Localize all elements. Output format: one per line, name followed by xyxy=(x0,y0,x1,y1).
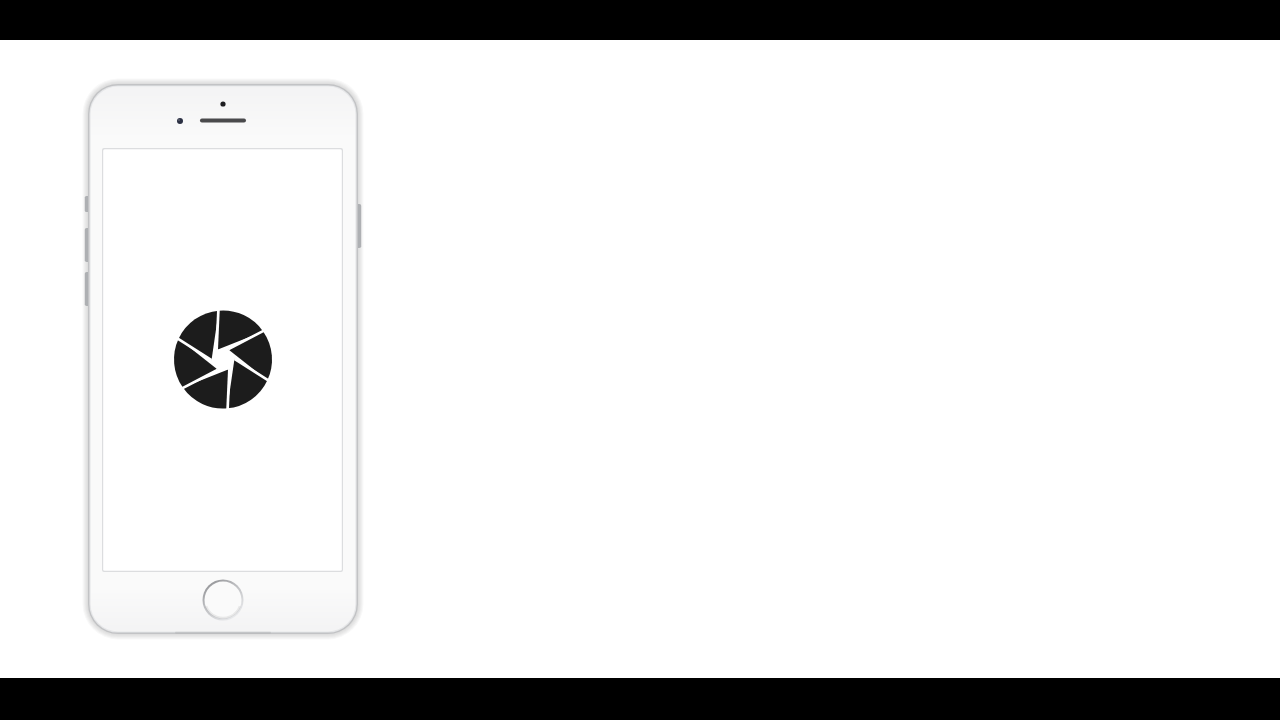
button[interactable]: Camera app splash screen on phone xyxy=(0,0,1280,720)
